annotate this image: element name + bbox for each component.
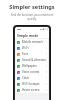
button[interactable]: Mobile network [16,39,48,45]
staticText: Wi-Fi hotspot [22,82,46,86]
staticText: Find the functions you need more [0,13,64,17]
staticText: Font [22,52,46,56]
button[interactable]: Home screen [16,87,48,93]
button[interactable]: Font [16,51,48,57]
button[interactable]: Voice control [16,69,48,75]
staticText: Mobile network [22,40,46,44]
staticText: Sound & vibration [22,58,46,62]
staticText: Wi-Fi [22,46,46,50]
staticText: Wallpapers [22,64,46,68]
button[interactable]: Sound & vibration [16,57,48,63]
button[interactable]: Clock [16,75,48,81]
button[interactable]: Wallpapers [16,63,48,69]
button[interactable]: Wi-Fi hotspot [16,81,48,87]
staticText: Clock [22,76,46,80]
staticText: Simpler settings [0,3,64,11]
staticText: quickly [0,17,64,21]
staticText: Voice control [22,70,46,74]
button[interactable]: Wi-Fi [16,45,48,51]
staticText: Simple mode settings [17,33,49,37]
staticText: Home screen [22,88,46,92]
